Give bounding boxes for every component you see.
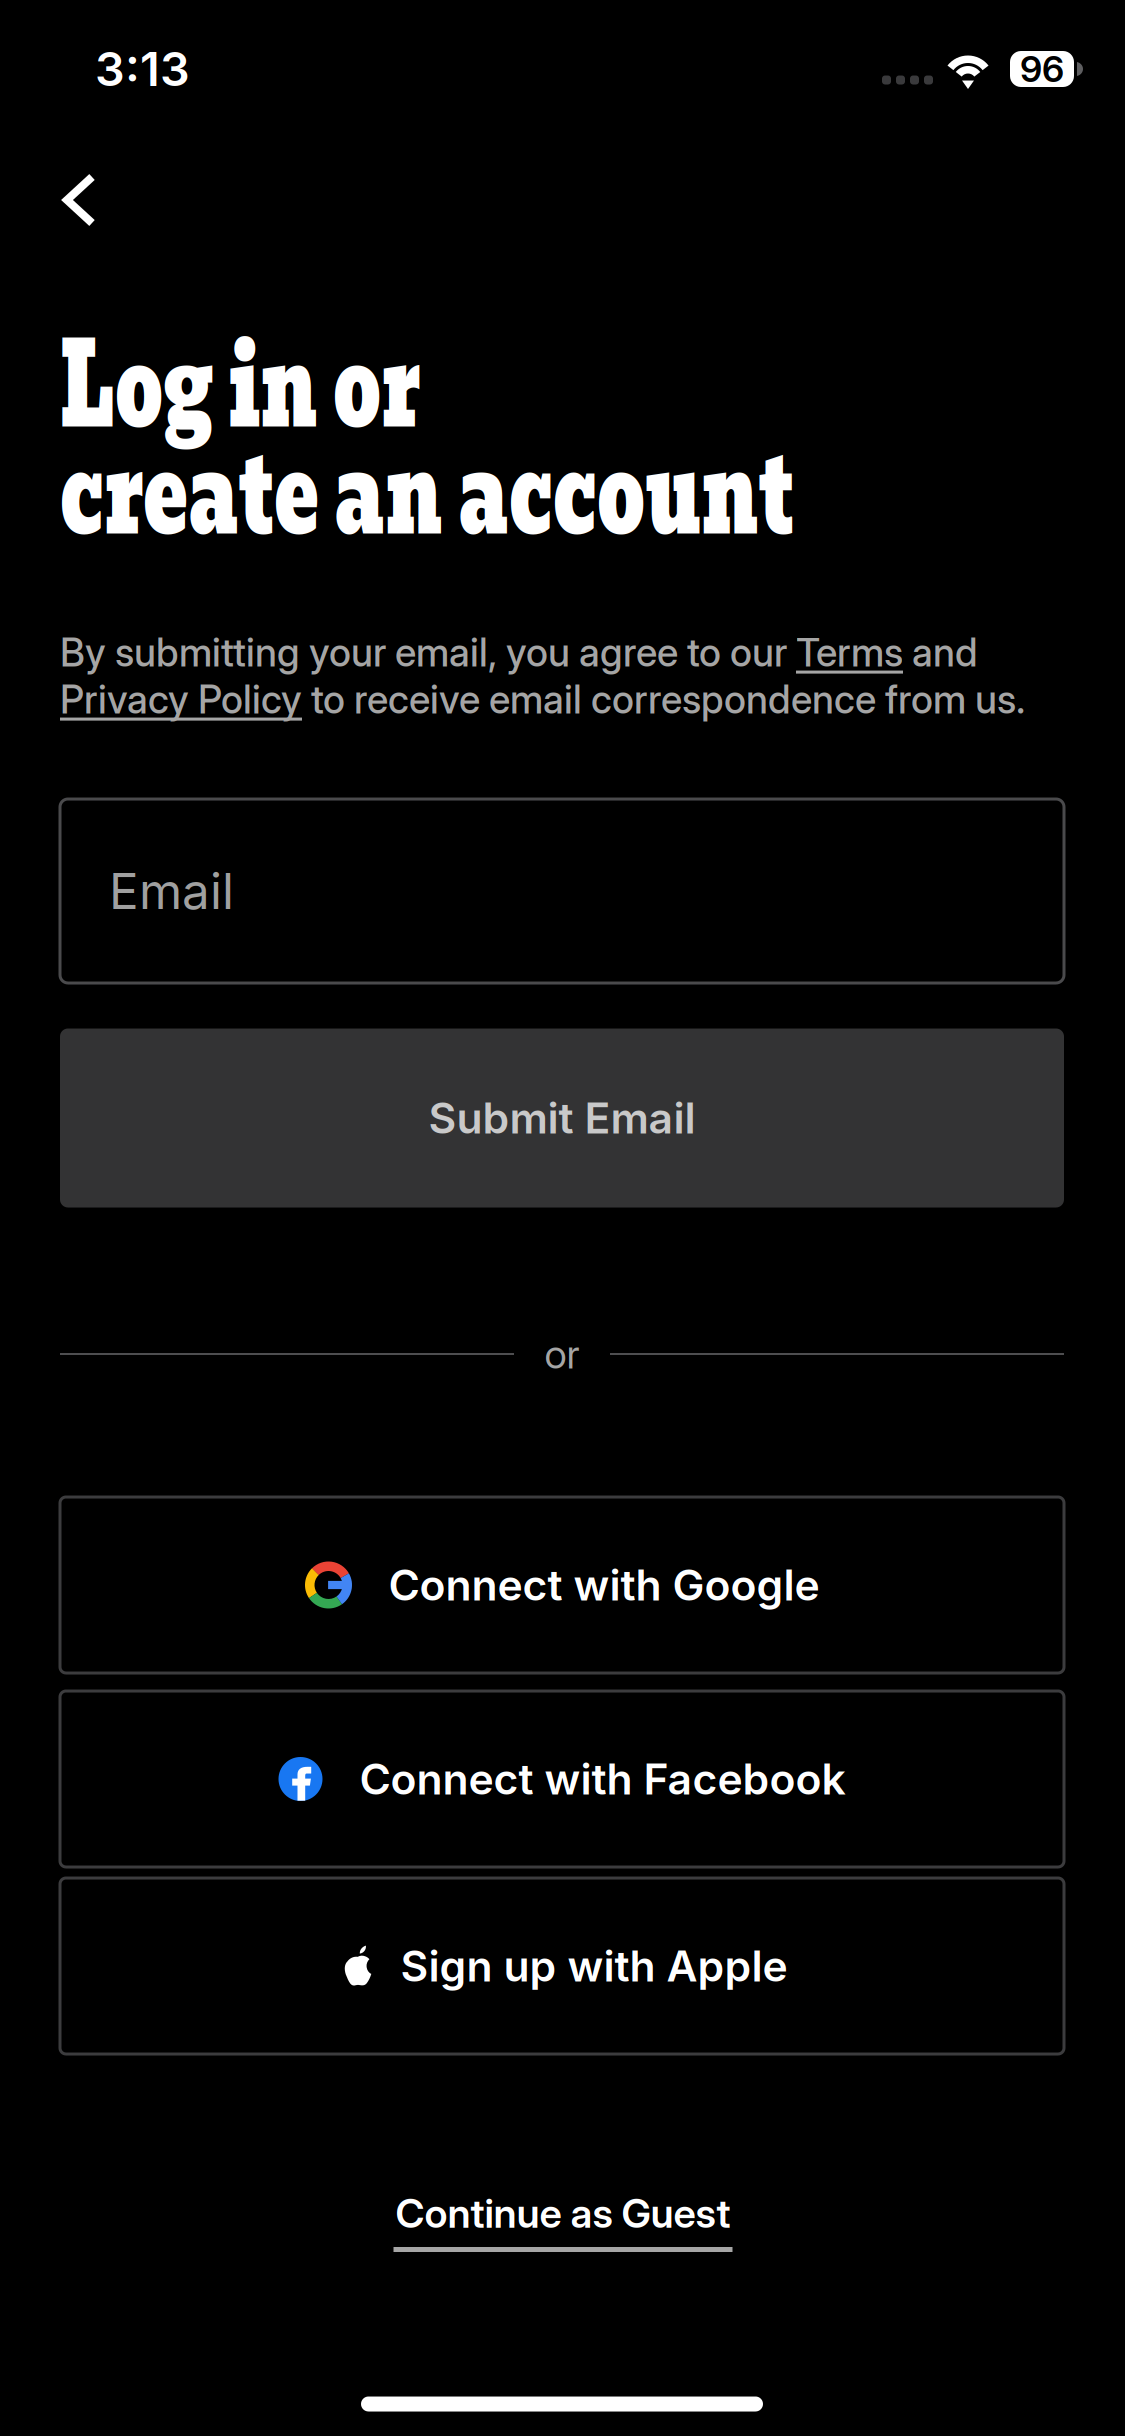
staticText: Submit Email xyxy=(428,1092,695,1144)
staticText: or xyxy=(544,1330,579,1378)
staticText: Privacy Policy to receive email correspo… xyxy=(60,677,1025,722)
staticText: Continue as Guest xyxy=(395,2189,730,2237)
staticText: Sign up with Apple xyxy=(400,1940,787,1992)
button[interactable]: Continue as Guest xyxy=(353,2189,773,2259)
staticText: 96 xyxy=(1020,47,1064,91)
button[interactable]: Submit Email xyxy=(60,1028,1064,1207)
button[interactable]: Sign up with Apple xyxy=(60,1878,1064,2054)
staticText: Email xyxy=(109,861,234,921)
staticText: By submitting your email, you agree to o… xyxy=(60,630,978,675)
button[interactable]: Back xyxy=(45,149,115,251)
staticText: Log in or xyxy=(60,326,421,446)
staticText: 3:13 xyxy=(95,41,190,97)
staticText: create an account xyxy=(60,433,794,553)
staticText: Connect with Google xyxy=(388,1559,819,1611)
button[interactable]: Connect with Facebook xyxy=(60,1691,1064,1867)
staticText: Connect with Facebook xyxy=(359,1753,845,1805)
button[interactable]: Email xyxy=(60,799,1064,983)
button[interactable]: Connect with Google xyxy=(60,1497,1064,1673)
